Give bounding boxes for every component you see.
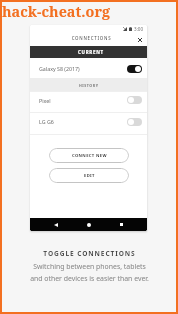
staticText: EDIT xyxy=(84,173,95,179)
staticText: Galaxy S8 (2017) xyxy=(39,65,80,72)
staticText: TOGGLE CONNECTIONS xyxy=(43,249,136,258)
button[interactable]: Close xyxy=(134,34,145,45)
button[interactable]: EDIT xyxy=(49,168,129,183)
staticText: LG G6 xyxy=(39,118,54,125)
staticText: HISTORY xyxy=(79,83,99,88)
button[interactable]: CONNECT NEW xyxy=(49,148,129,163)
button[interactable]: Galaxy S8 (2017) xyxy=(30,60,147,77)
staticText: CURRENT xyxy=(78,49,104,55)
button[interactable]: LG G6 xyxy=(30,112,147,131)
button[interactable]: Recent apps xyxy=(110,218,132,231)
staticText: CONNECTIONS xyxy=(33,35,147,41)
button[interactable]: Back xyxy=(45,218,67,231)
staticText: 3:00 xyxy=(134,26,144,31)
staticText: hack-cheat.org xyxy=(2,2,110,22)
button[interactable]: Home xyxy=(78,218,100,231)
staticText: Pixel xyxy=(39,97,51,104)
staticText: Switching between phones, tablets and ot… xyxy=(30,262,149,283)
staticText: CONNECT NEW xyxy=(72,153,107,159)
button[interactable]: Pixel xyxy=(30,91,147,109)
